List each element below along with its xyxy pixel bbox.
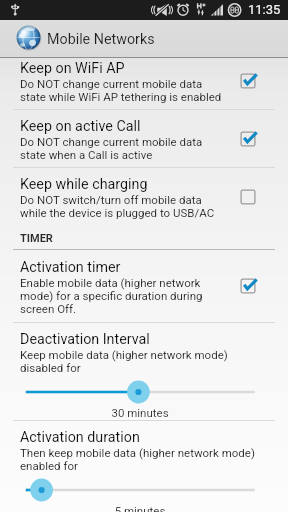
staticText: Keep mobile data (higher network mode) [20,348,228,361]
staticText: 11:35 [248,2,281,17]
other: Checked [237,275,259,297]
staticText: Mobile Networks [47,31,155,48]
staticText: Keep on WiFi AP [20,60,125,77]
button[interactable]: Mobile Networks [0,20,288,57]
button[interactable]: Keep on WiFi AP [0,52,288,109]
staticText: 5 minutes [26,504,254,512]
staticText: Activation duration [20,429,140,446]
staticText: Keep while charging [20,176,148,193]
button[interactable]: Activation duration [0,421,288,506]
staticText: TIMER [20,232,53,245]
staticText: state while WiFi AP tethering is enabled [20,90,222,103]
staticText: 30 minutes [26,406,254,419]
staticText: Do NOT change current mobile data [20,77,203,90]
staticText: mode) for a specific duration during [20,289,203,302]
button[interactable]: Deactivation Interval [0,323,288,420]
staticText: Activation timer [20,259,121,276]
staticText: Deactivation Interval [20,331,150,348]
staticText: disabled for [20,361,81,374]
staticText: Do NOT change current mobile data [20,135,203,148]
other: Checked [237,70,259,92]
button[interactable] [0,380,288,404]
staticText: Keep on active Call [20,118,141,135]
staticText: Enable mobile data (higher network [20,276,201,289]
other: Checked [237,128,259,150]
button[interactable]: Keep on active Call [0,110,288,167]
other: Unchecked [237,186,259,208]
staticText: Do NOT switch/turn off mobile data [20,193,202,206]
staticText: screen Off. [20,302,77,315]
staticText: Then keep mobile data (higher network mo… [20,446,255,459]
staticText: enabled for [20,459,78,472]
button[interactable] [0,478,288,502]
staticText: while the device is plugged to USB/AC [20,206,215,219]
button[interactable]: Keep while charging [0,168,288,225]
button[interactable]: Activation timer [0,250,288,322]
staticText: state when a Call is active [20,148,153,161]
